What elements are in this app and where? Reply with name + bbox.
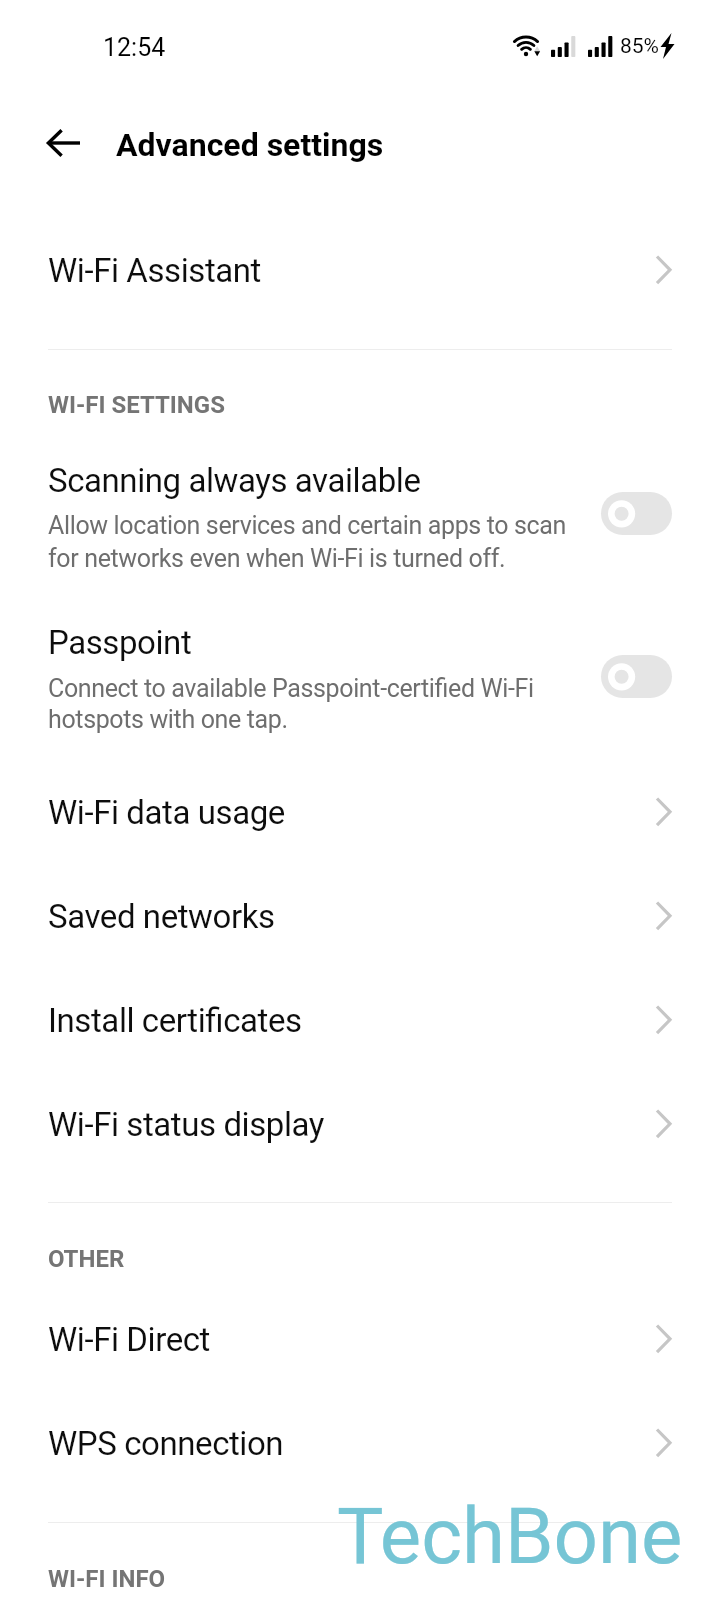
button[interactable]: Back [32,111,96,175]
button[interactable]: Toggle Passpoint [601,655,672,698]
staticText: TechBone [337,1491,683,1582]
button[interactable]: Saved networks [0,864,720,968]
button[interactable]: Wi-Fi status display [0,1072,720,1176]
staticText: WPS connection [48,1424,284,1463]
staticText: Install certificates [48,1001,302,1040]
staticText: Passpoint [48,623,192,662]
staticText: Saved networks [48,897,275,936]
staticText: Allow location services and certain apps… [48,511,567,540]
staticText: Wi-Fi data usage [48,793,285,832]
button[interactable]: Install certificates [0,968,720,1072]
button[interactable]: Wi-Fi Assistant [0,218,720,322]
staticText: WI-FI INFO [48,1565,166,1593]
staticText: Wi-Fi Assistant [48,251,261,290]
button[interactable] [0,602,720,762]
button[interactable]: Toggle Scanning always available [601,492,672,535]
staticText: 85% [620,34,659,59]
staticText: Wi-Fi Direct [48,1320,210,1359]
staticText: OTHER [48,1245,125,1273]
button[interactable] [0,440,720,600]
button[interactable]: Wi-Fi Direct [0,1287,720,1391]
button[interactable]: WPS connection [0,1391,720,1495]
staticText: Scanning always available [48,461,421,500]
staticText: Advanced settings [116,126,384,164]
staticText: 12:54 [103,33,166,62]
staticText: Wi-Fi status display [48,1105,324,1144]
staticText: for networks even when Wi-Fi is turned o… [48,544,506,573]
staticText: Connect to available Passpoint-certified… [48,674,534,703]
button[interactable]: Wi-Fi data usage [0,760,720,864]
staticText: hotspots with one tap. [48,705,288,734]
staticText: WI-FI SETTINGS [48,391,225,419]
